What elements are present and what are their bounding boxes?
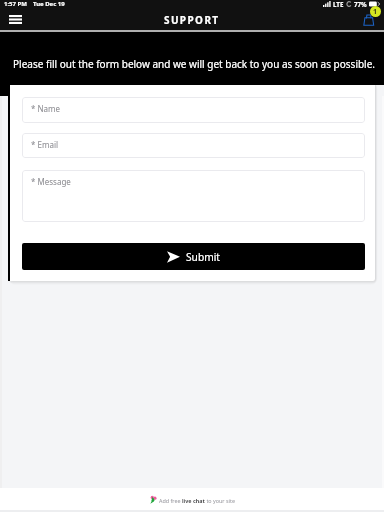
staticText: Please fill out the form below and we wi… bbox=[13, 57, 376, 71]
staticText: SUPPORT bbox=[164, 13, 220, 27]
button[interactable]: * Email bbox=[22, 133, 365, 158]
button[interactable]: * Name bbox=[22, 97, 365, 123]
staticText: LTE bbox=[333, 0, 344, 8]
staticText: to your site bbox=[205, 497, 235, 504]
staticText: 1 bbox=[373, 7, 378, 17]
button[interactable]: Submit bbox=[22, 243, 365, 270]
staticText: live chat bbox=[182, 497, 205, 504]
button[interactable]: Shopping cart, 1 item bbox=[363, 13, 375, 26]
staticText: 1:57 PM bbox=[4, 0, 27, 8]
staticText: Tue Dec 19 bbox=[33, 0, 65, 8]
button[interactable]: * Message bbox=[22, 170, 365, 222]
staticText: 77% bbox=[354, 0, 367, 8]
staticText: * Name bbox=[31, 103, 61, 114]
button[interactable]: Open navigation menu bbox=[9, 13, 23, 26]
button[interactable]: Add free bbox=[0, 488, 384, 512]
staticText: Add free bbox=[159, 497, 182, 504]
staticText: * Email bbox=[31, 139, 59, 150]
staticText: Submit bbox=[186, 250, 220, 264]
staticText: * Message bbox=[31, 176, 71, 187]
